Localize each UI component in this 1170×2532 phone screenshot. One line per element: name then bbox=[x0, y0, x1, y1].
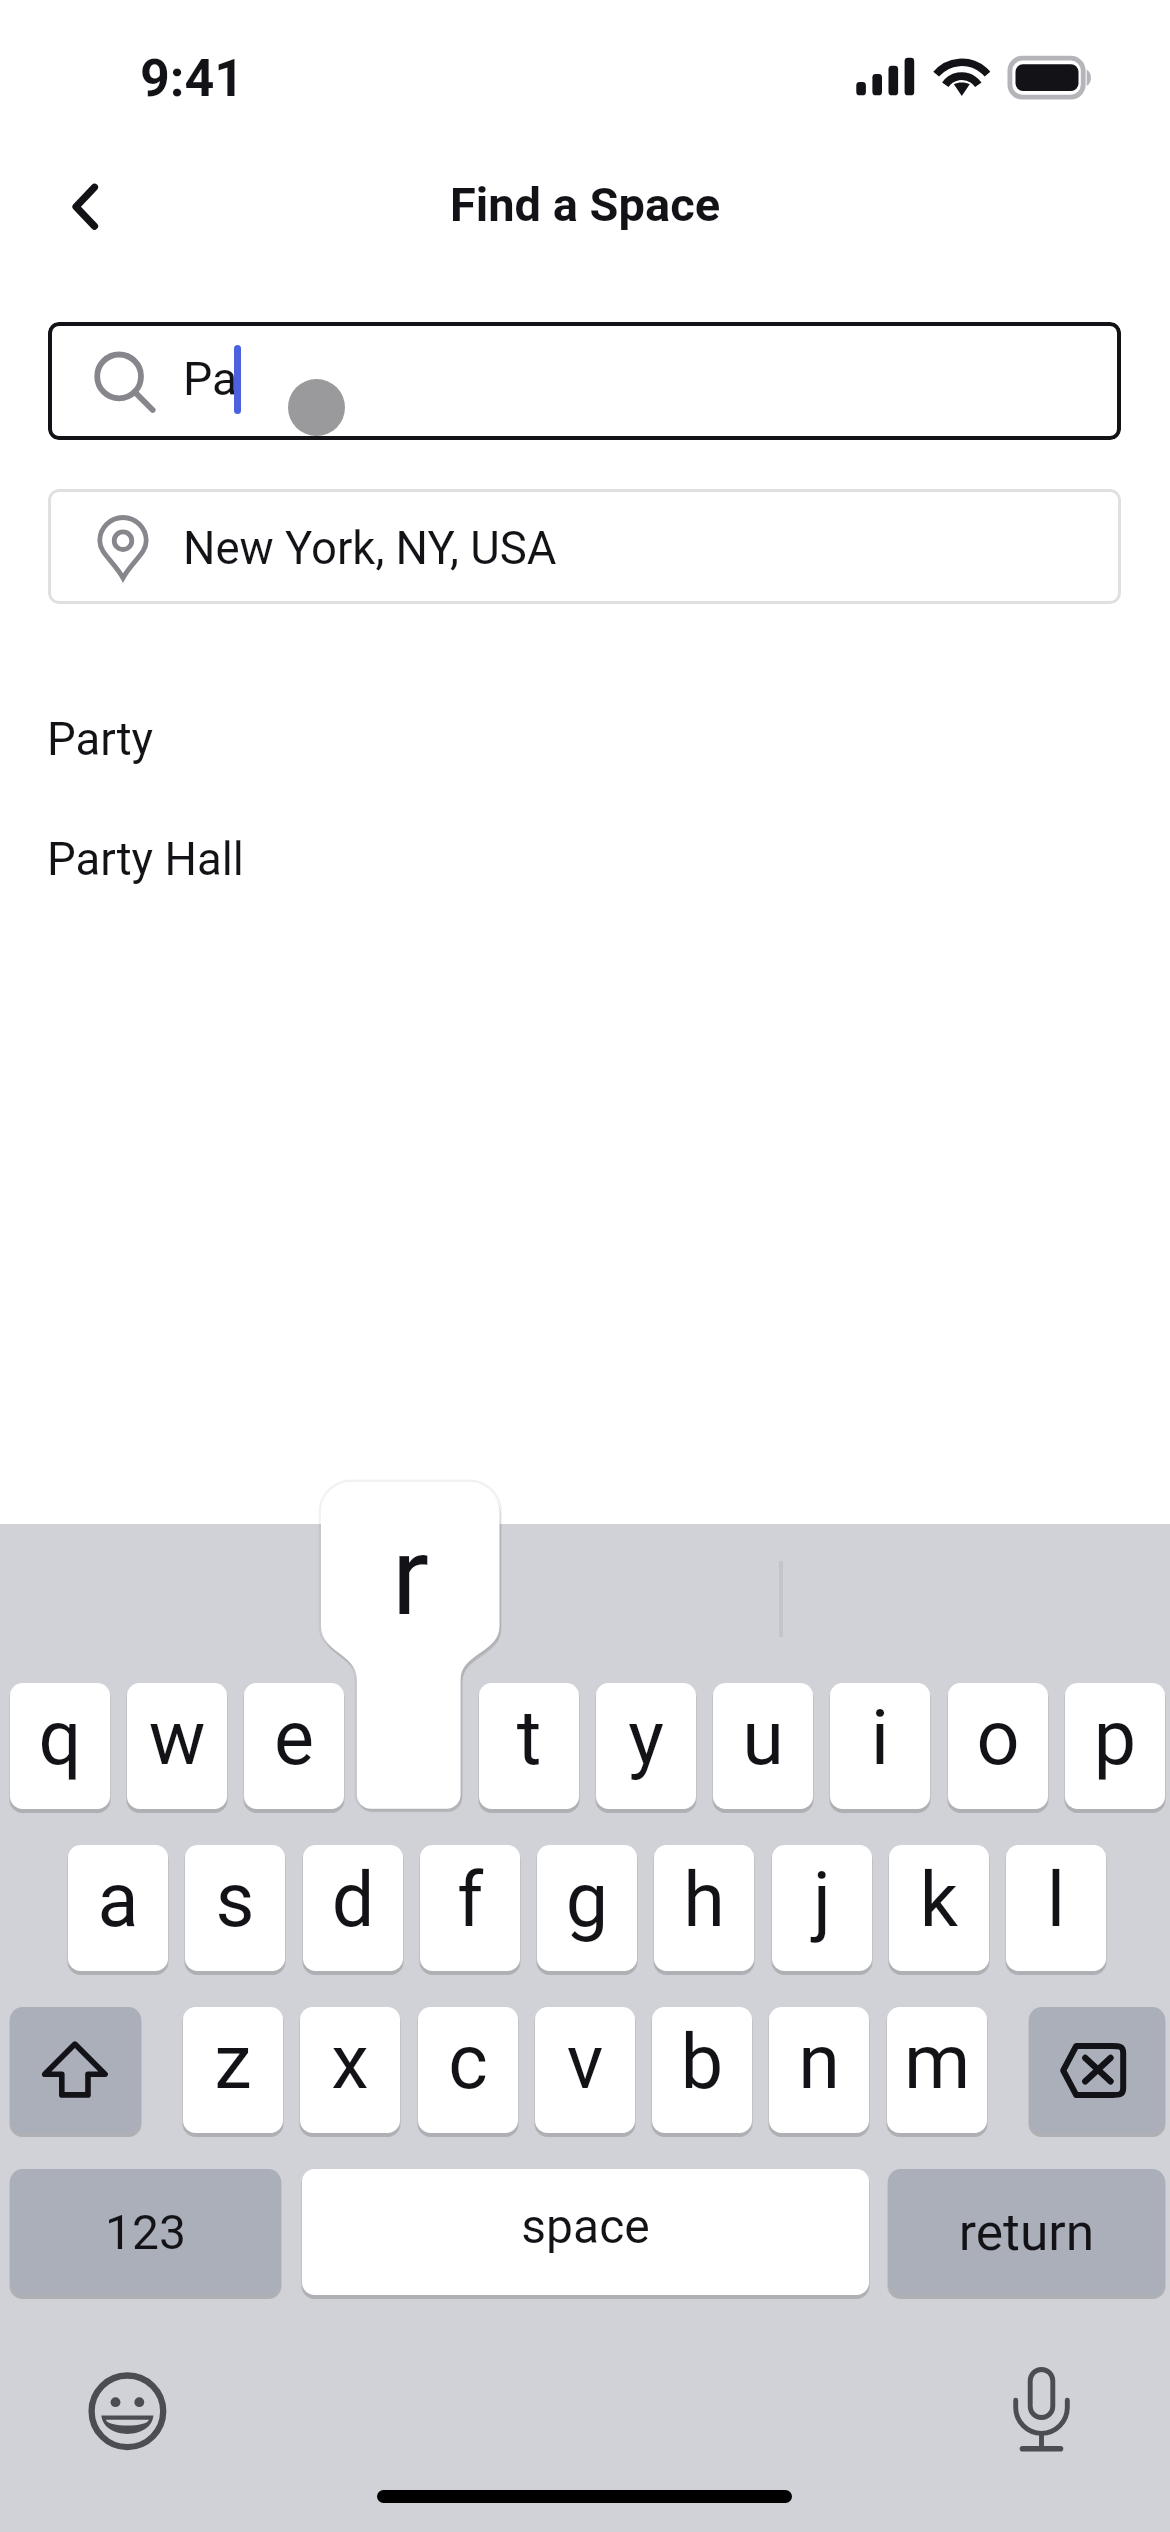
button[interactable]: Emoji keyboard bbox=[86, 2370, 170, 2454]
staticText: space bbox=[302, 2198, 869, 2254]
button[interactable] bbox=[535, 2007, 635, 2133]
button[interactable] bbox=[127, 1683, 227, 1809]
button[interactable] bbox=[888, 2169, 1165, 2295]
button[interactable] bbox=[183, 2007, 283, 2133]
button[interactable] bbox=[948, 1683, 1048, 1809]
staticText: n bbox=[769, 2018, 869, 2106]
button[interactable] bbox=[1065, 1683, 1165, 1809]
staticText: l bbox=[1006, 1856, 1106, 1944]
staticText: z bbox=[183, 2018, 283, 2106]
button[interactable] bbox=[537, 1845, 637, 1971]
staticText: o bbox=[948, 1694, 1048, 1782]
button[interactable] bbox=[48, 322, 1121, 440]
button[interactable] bbox=[654, 1845, 754, 1971]
staticText: e bbox=[244, 1694, 344, 1782]
button[interactable] bbox=[302, 2169, 869, 2295]
button[interactable]: Backspace bbox=[1029, 2007, 1165, 2133]
button[interactable] bbox=[887, 2007, 987, 2133]
button[interactable] bbox=[769, 2007, 869, 2133]
staticText: k bbox=[889, 1856, 989, 1944]
staticText: c bbox=[418, 2018, 518, 2106]
staticText: a bbox=[68, 1856, 168, 1944]
button[interactable] bbox=[596, 1683, 696, 1809]
button[interactable] bbox=[68, 1845, 168, 1971]
staticText: t bbox=[479, 1694, 579, 1782]
button[interactable]: Dictation bbox=[999, 2360, 1083, 2444]
staticText: New York, NY, USA bbox=[183, 522, 557, 575]
staticText: j bbox=[772, 1856, 872, 1944]
button[interactable] bbox=[303, 1845, 403, 1971]
staticText: b bbox=[652, 2018, 752, 2106]
button[interactable]: Party bbox=[0, 683, 1170, 783]
staticText: x bbox=[300, 2018, 400, 2106]
button[interactable] bbox=[244, 1683, 344, 1809]
button[interactable] bbox=[652, 2007, 752, 2133]
button[interactable] bbox=[479, 1683, 579, 1809]
button[interactable]: Party Hall bbox=[0, 803, 1170, 903]
button[interactable]: Shift bbox=[10, 2007, 141, 2133]
button[interactable] bbox=[772, 1845, 872, 1971]
staticText: i bbox=[830, 1694, 930, 1782]
staticText: Find a Space bbox=[0, 177, 1170, 232]
staticText: f bbox=[420, 1856, 520, 1944]
staticText: g bbox=[537, 1856, 637, 1944]
button[interactable] bbox=[713, 1683, 813, 1809]
button[interactable]: Back bbox=[28, 160, 120, 252]
button[interactable] bbox=[10, 2169, 281, 2295]
staticText: u bbox=[713, 1694, 813, 1782]
staticText: d bbox=[303, 1856, 403, 1944]
staticText: Party bbox=[47, 713, 154, 766]
button[interactable] bbox=[185, 1845, 285, 1971]
button[interactable] bbox=[1006, 1845, 1106, 1971]
staticText: m bbox=[887, 2018, 987, 2106]
staticText: q bbox=[10, 1694, 110, 1782]
button[interactable] bbox=[48, 489, 1121, 604]
button[interactable] bbox=[830, 1683, 930, 1809]
staticText: w bbox=[127, 1694, 227, 1782]
staticText: 9:41 bbox=[140, 48, 245, 109]
staticText: Pa bbox=[183, 352, 238, 406]
button[interactable] bbox=[420, 1845, 520, 1971]
staticText: v bbox=[535, 2018, 635, 2106]
button[interactable] bbox=[300, 2007, 400, 2133]
staticText: return bbox=[888, 2202, 1165, 2262]
staticText: h bbox=[654, 1856, 754, 1944]
button[interactable] bbox=[10, 1683, 110, 1809]
button[interactable] bbox=[889, 1845, 989, 1971]
staticText: s bbox=[185, 1856, 285, 1944]
staticText: r bbox=[321, 1512, 500, 1641]
staticText: p bbox=[1065, 1694, 1165, 1782]
staticText: 123 bbox=[10, 2204, 281, 2260]
button[interactable] bbox=[418, 2007, 518, 2133]
staticText: Party Hall bbox=[47, 833, 244, 886]
staticText: y bbox=[596, 1694, 696, 1782]
